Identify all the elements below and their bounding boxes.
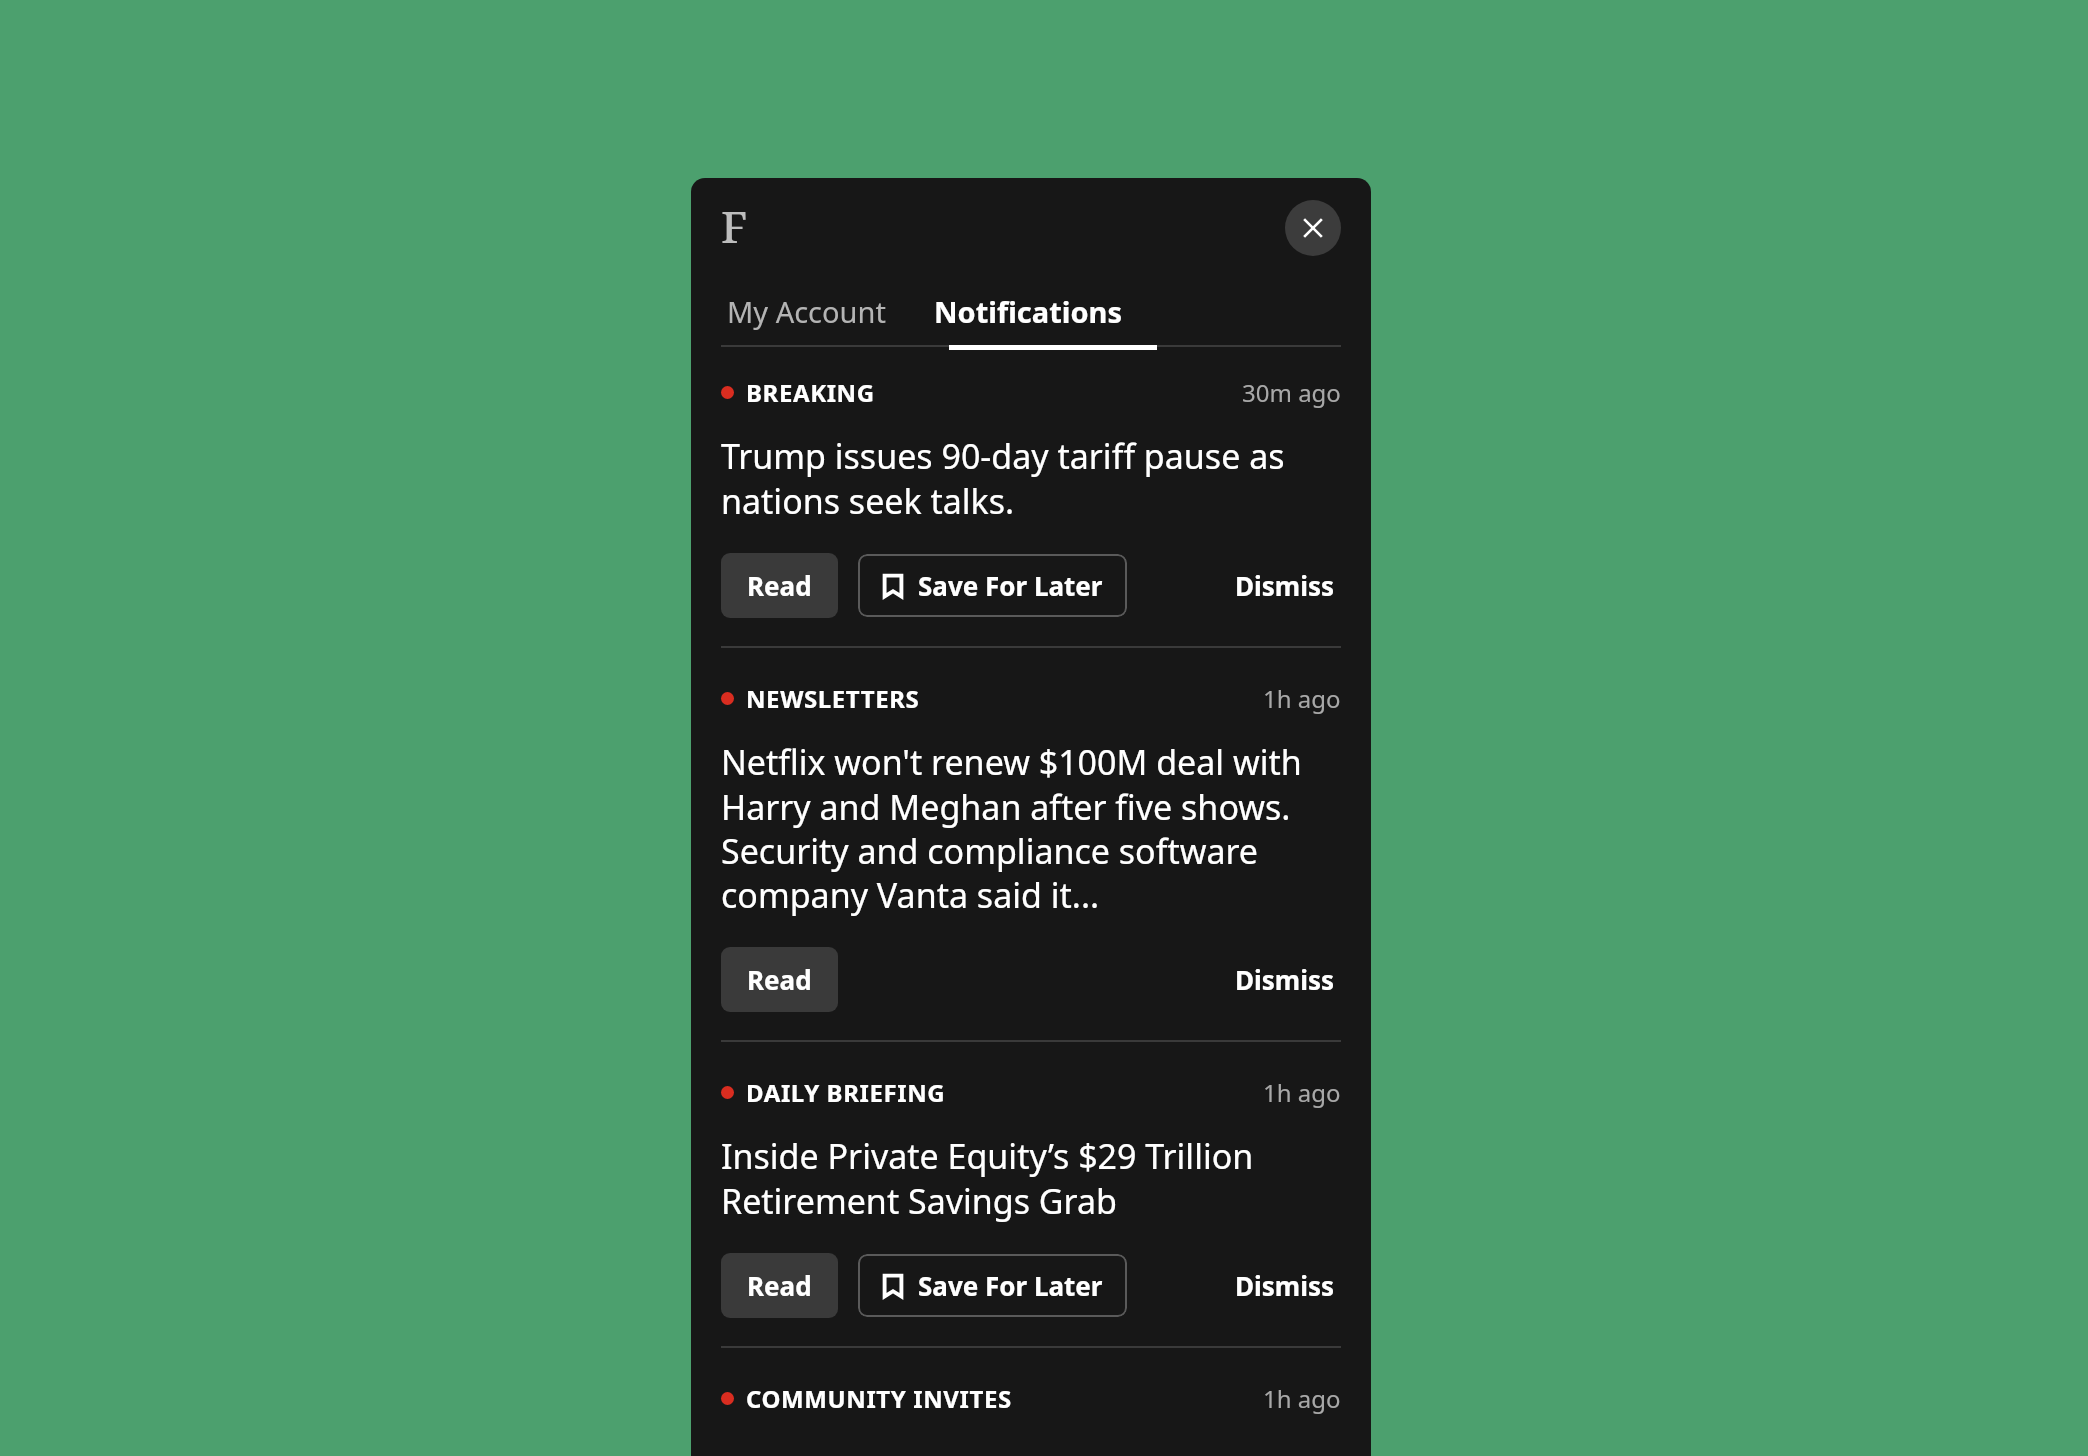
staticText: 1h ago bbox=[1263, 682, 1341, 715]
button[interactable]: My Account bbox=[721, 278, 892, 345]
staticText: Save For Later bbox=[918, 568, 1103, 603]
button[interactable]: Save For Later bbox=[858, 1254, 1127, 1317]
button[interactable]: Save For Later bbox=[858, 554, 1127, 617]
staticText: Dismiss bbox=[1235, 1268, 1335, 1303]
staticText: Dismiss bbox=[1235, 568, 1335, 603]
staticText: Read bbox=[747, 1268, 812, 1303]
staticText: Inside Private Equity’s $29 Trillion Ret… bbox=[721, 1133, 1341, 1223]
staticText: DAILY BRIEFING bbox=[746, 1076, 946, 1109]
staticText: 1h ago bbox=[1263, 1382, 1341, 1415]
staticText: Read bbox=[747, 962, 812, 997]
staticText: F bbox=[721, 196, 748, 256]
button[interactable]: Notifications bbox=[926, 278, 1130, 345]
staticText: Save For Later bbox=[918, 1268, 1103, 1303]
staticText: BREAKING bbox=[746, 376, 875, 409]
staticText: My Account bbox=[727, 292, 886, 331]
button[interactable]: Read bbox=[721, 1253, 838, 1318]
button[interactable]: Read bbox=[721, 553, 838, 618]
button[interactable]: Read bbox=[721, 947, 838, 1012]
staticText: Notifications bbox=[934, 292, 1122, 331]
staticText: 30m ago bbox=[1242, 376, 1341, 409]
button[interactable]: Dismiss bbox=[1229, 947, 1341, 1012]
staticText: 1h ago bbox=[1263, 1076, 1341, 1109]
staticText: COMMUNITY INVITES bbox=[746, 1382, 1012, 1415]
button[interactable]: Close bbox=[1285, 200, 1341, 256]
staticText: Read bbox=[747, 568, 812, 603]
staticText: NEWSLETTERS bbox=[746, 682, 920, 715]
staticText: Trump issues 90-day tariff pause as nati… bbox=[721, 433, 1341, 523]
staticText: Netflix won't renew $100M deal with Harr… bbox=[721, 739, 1341, 917]
button[interactable]: Dismiss bbox=[1229, 553, 1341, 618]
button[interactable]: Dismiss bbox=[1229, 1253, 1341, 1318]
staticText: Dismiss bbox=[1235, 962, 1335, 997]
